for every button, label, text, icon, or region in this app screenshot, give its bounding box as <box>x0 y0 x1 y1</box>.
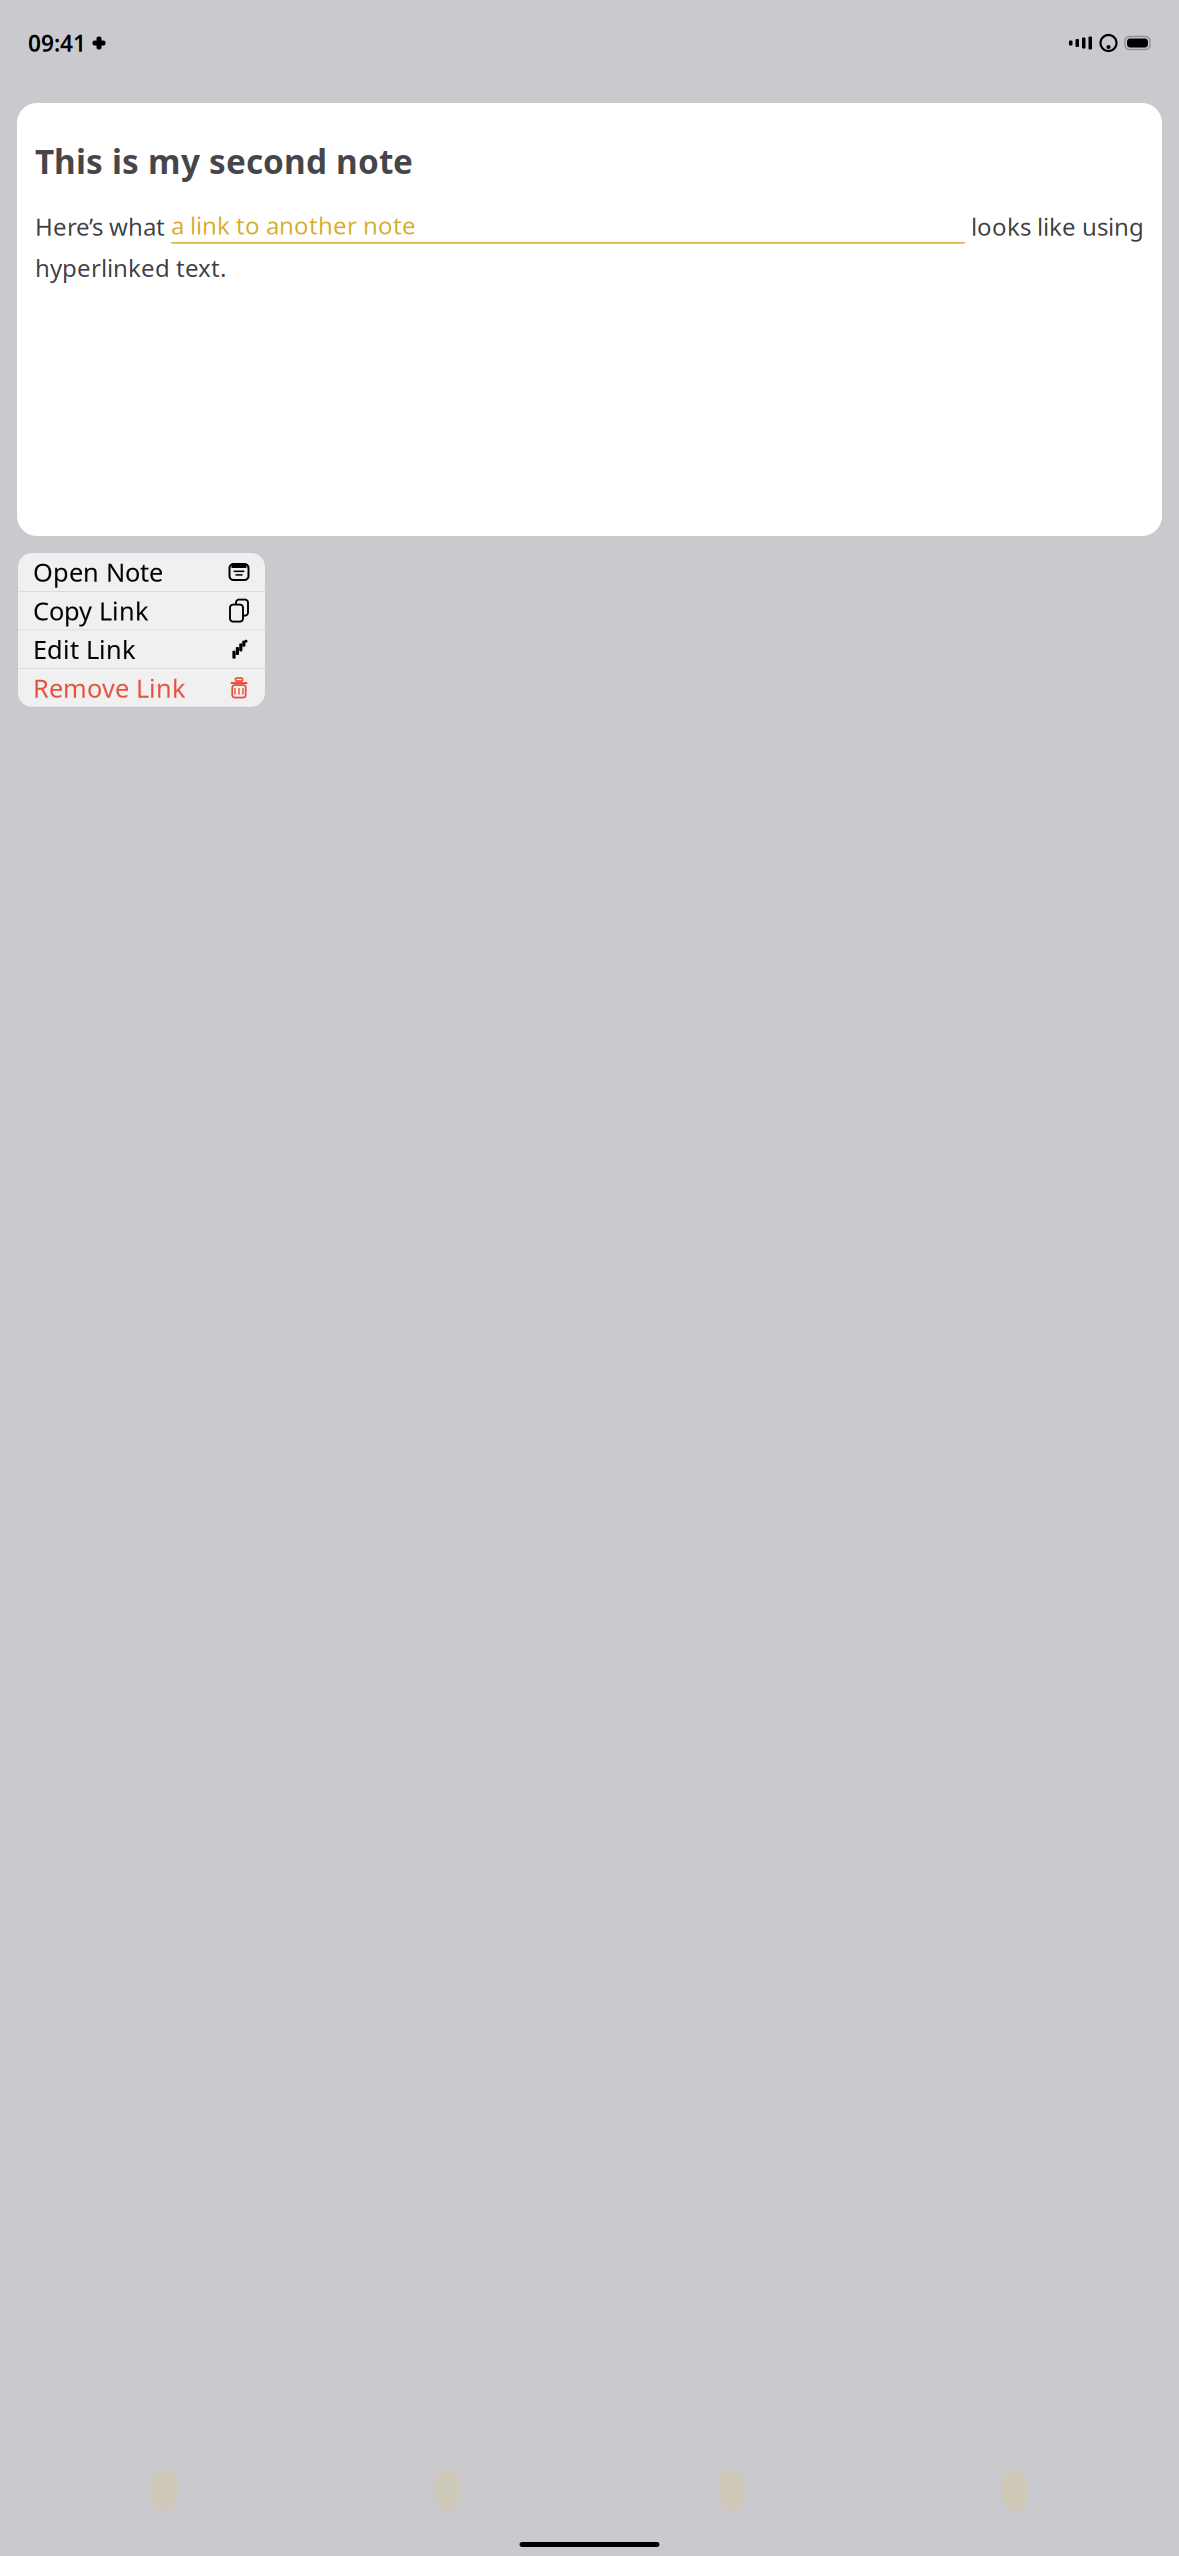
staticText: 09:41 <box>28 28 86 58</box>
staticText: Remove Link <box>33 671 186 705</box>
staticText: Edit Link <box>33 632 136 666</box>
button[interactable]: Copy Link <box>18 592 265 630</box>
button[interactable]: Remove Link <box>18 669 265 707</box>
staticText: This is my second note <box>35 139 413 183</box>
staticText: Open Note <box>33 555 163 589</box>
staticText: a link to another note <box>171 209 416 241</box>
button[interactable]: Open Note <box>18 553 265 591</box>
staticText: hyperlinked text. <box>35 252 226 283</box>
staticText: Here’s what <box>35 210 171 242</box>
button[interactable]: Edit Link <box>18 630 265 668</box>
button[interactable]: a link to another note <box>171 209 965 244</box>
staticText: looks like using <box>965 210 1144 242</box>
staticText: Copy Link <box>33 594 149 627</box>
